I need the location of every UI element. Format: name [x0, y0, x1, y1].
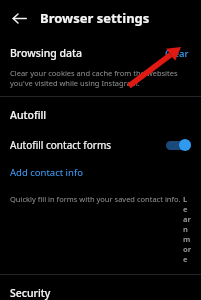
staticText: Browser settings: [40, 9, 150, 27]
button[interactable]: Add contact info: [0, 165, 93, 180]
button[interactable]: Autofill contact forms: [0, 135, 201, 155]
staticText: Clear your cookies and cache from the we…: [10, 68, 191, 88]
staticText: Quickly fill in forms with your saved co…: [10, 194, 183, 204]
button[interactable]: Back: [6, 5, 32, 31]
button[interactable]: Learn more: [183, 194, 191, 264]
staticText: Clear: [165, 47, 189, 60]
staticText: Security: [10, 286, 51, 300]
button[interactable]: Clear: [163, 45, 191, 62]
button[interactable]: Toggle: [166, 139, 191, 151]
staticText: Browsing data: [10, 46, 163, 60]
staticText: Add contact info: [10, 166, 83, 179]
staticText: Autofill: [10, 108, 47, 122]
staticText: Autofill contact forms: [10, 138, 166, 152]
